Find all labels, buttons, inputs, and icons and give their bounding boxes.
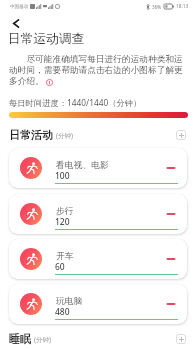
staticText: 18:13 <box>176 3 189 10</box>
button[interactable]: 添加 <box>176 334 186 344</box>
button[interactable]: 看电视、电影 <box>9 148 187 188</box>
staticText: 日常活动 <box>9 128 53 142</box>
staticText: (分钟) <box>56 131 73 140</box>
button[interactable]: 减少 <box>164 161 178 175</box>
button[interactable]: 添加 <box>176 130 186 140</box>
button[interactable]: 减少 <box>164 297 178 311</box>
staticText: 36% <box>152 4 162 10</box>
button[interactable]: 帮助说明 <box>43 76 55 88</box>
button[interactable]: 开车 <box>9 239 187 279</box>
staticText: 日常运动调查 <box>8 31 85 47</box>
staticText: 开车 <box>56 251 74 262</box>
staticText: 看电视、电影 <box>56 160 109 171</box>
staticText: 100 <box>55 170 70 182</box>
staticText: 中国移动 <box>10 4 29 10</box>
staticText: 480 <box>55 306 70 318</box>
staticText: 步行 <box>56 206 74 217</box>
staticText: 睡眠 <box>9 332 31 346</box>
button[interactable]: 步行 <box>9 194 187 234</box>
button[interactable]: 减少 <box>164 252 178 266</box>
staticText: 每日时间进度：1440/1440（分钟） <box>9 97 142 108</box>
button[interactable]: 返回 <box>3 12 29 34</box>
staticText: 玩电脑 <box>56 296 83 307</box>
button[interactable]: 玩电脑 <box>9 284 187 324</box>
staticText: 60 <box>55 261 65 273</box>
button[interactable]: 减少 <box>164 207 178 221</box>
staticText: 120 <box>55 216 70 228</box>
staticText: 尽可能准确填写每日进行的运动种类和运动时间，需要帮助请点击右边的小图标了解更多介… <box>9 53 187 87</box>
staticText: (分钟) <box>34 335 51 344</box>
